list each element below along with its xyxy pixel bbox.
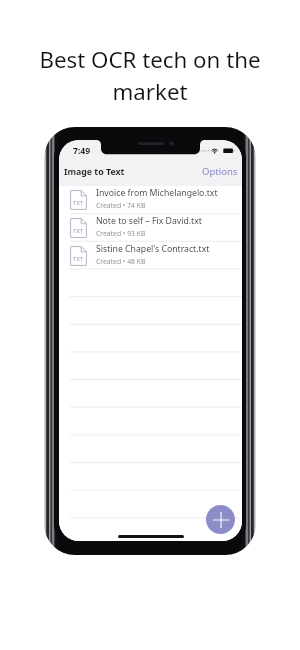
button[interactable]: Options [195,162,242,183]
staticText: TXT [73,227,84,235]
staticText: TXT [73,199,84,207]
staticText: Image to Text [64,166,125,178]
button[interactable]: TXT [59,242,242,270]
button[interactable]: Add new document [206,505,235,534]
staticText: Note to self – Fix David.txt [96,215,202,227]
staticText: 7:49 [73,145,91,157]
staticText: Sistine Chapel's Contract.txt [96,243,210,255]
staticText: TXT [73,255,84,263]
staticText: Best OCR tech on the market [26,44,274,106]
button[interactable]: TXT [59,186,242,214]
staticText: Invoice from Michelangelo.txt [96,187,218,199]
staticText: Created • 48 KB [96,257,146,266]
staticText: Created • 74 KB [96,201,146,210]
staticText: Options [202,165,238,178]
button[interactable]: TXT [59,214,242,242]
staticText: Created • 93 KB [96,229,146,238]
